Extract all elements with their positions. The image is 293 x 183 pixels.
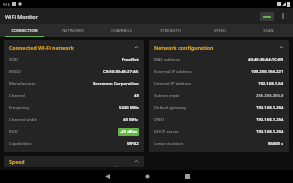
staticText: SCAN: [263, 28, 274, 33]
staticText: Lease duration: [154, 141, 184, 147]
staticText: SSID: [9, 57, 19, 63]
staticText: NETWORKS: [62, 28, 84, 33]
staticText: DNS1: [154, 117, 165, 123]
button[interactable]: NETWORKS: [48, 24, 97, 37]
staticText: Manufacturer: [9, 81, 36, 87]
staticText: Connected Wi-Fi network: [9, 44, 74, 51]
staticText: 192.168.1.254: [256, 117, 284, 123]
staticText: Frequency: [9, 105, 30, 111]
button[interactable]: Recent apps: [176, 170, 198, 183]
staticText: 9:16: [3, 2, 10, 7]
staticText: 192.168.1.254: [256, 129, 284, 135]
button[interactable]: SCAN: [244, 24, 293, 37]
staticText: 48: [134, 93, 139, 99]
staticText: STRENGTH: [160, 28, 181, 33]
button[interactable]: Toggle monitoring: [260, 12, 274, 21]
staticText: WiFi Monitor: [5, 13, 38, 20]
button[interactable]: Connected Wi-Fi network: [4, 40, 144, 54]
staticText: -41 dBm: [120, 129, 137, 135]
staticText: 255.255.255.0: [256, 93, 284, 99]
staticText: RSSI: [9, 129, 18, 135]
staticText: 40 MHz: [123, 117, 139, 123]
button[interactable]: Network configuration: [149, 40, 289, 54]
staticText: 5240 MHz: [119, 105, 139, 111]
staticText: Subnet mask: [154, 93, 180, 99]
staticText: CONNECTION: [11, 28, 38, 33]
staticText: Channel width: [9, 117, 38, 123]
button[interactable]: Home: [136, 170, 158, 183]
staticText: External IP address: [154, 69, 192, 75]
staticText: Channel: [9, 93, 26, 99]
button[interactable]: CHANNELS: [97, 24, 146, 37]
staticText: DHCP server: [154, 129, 179, 135]
staticText: 192.168.1.64: [258, 81, 284, 87]
staticText: WPA2: [127, 141, 139, 147]
staticText: Sercomm Corporation: [93, 81, 139, 87]
staticText: C8:50:30:4E:27:A5: [103, 69, 139, 75]
staticText: CHANNELS: [111, 28, 132, 33]
staticText: Capabilities: [9, 141, 32, 147]
staticText: BSSID: [9, 69, 21, 75]
button[interactable]: STRENGTH: [146, 24, 195, 37]
staticText: SPEED: [214, 28, 226, 33]
button[interactable]: CONNECTION: [0, 24, 48, 37]
staticText: 86400 s: [268, 141, 284, 147]
staticText: 109.250.194.221: [251, 69, 284, 75]
button[interactable]: More options: [278, 11, 288, 21]
staticText: 192.168.1.254: [256, 105, 284, 111]
button[interactable]: Back: [96, 170, 118, 183]
staticText: Speed: [9, 158, 25, 165]
staticText: 40:4E:36:84:1C:B9: [248, 57, 284, 63]
staticText: MAC address: [154, 57, 180, 63]
button[interactable]: Speed: [4, 156, 144, 167]
staticText: Default gateway: [154, 105, 186, 111]
staticText: FreeNet: [122, 57, 139, 63]
staticText: Internal IP address: [154, 81, 192, 87]
staticText: Network configuration: [154, 44, 214, 51]
button[interactable]: SPEED: [195, 24, 244, 37]
